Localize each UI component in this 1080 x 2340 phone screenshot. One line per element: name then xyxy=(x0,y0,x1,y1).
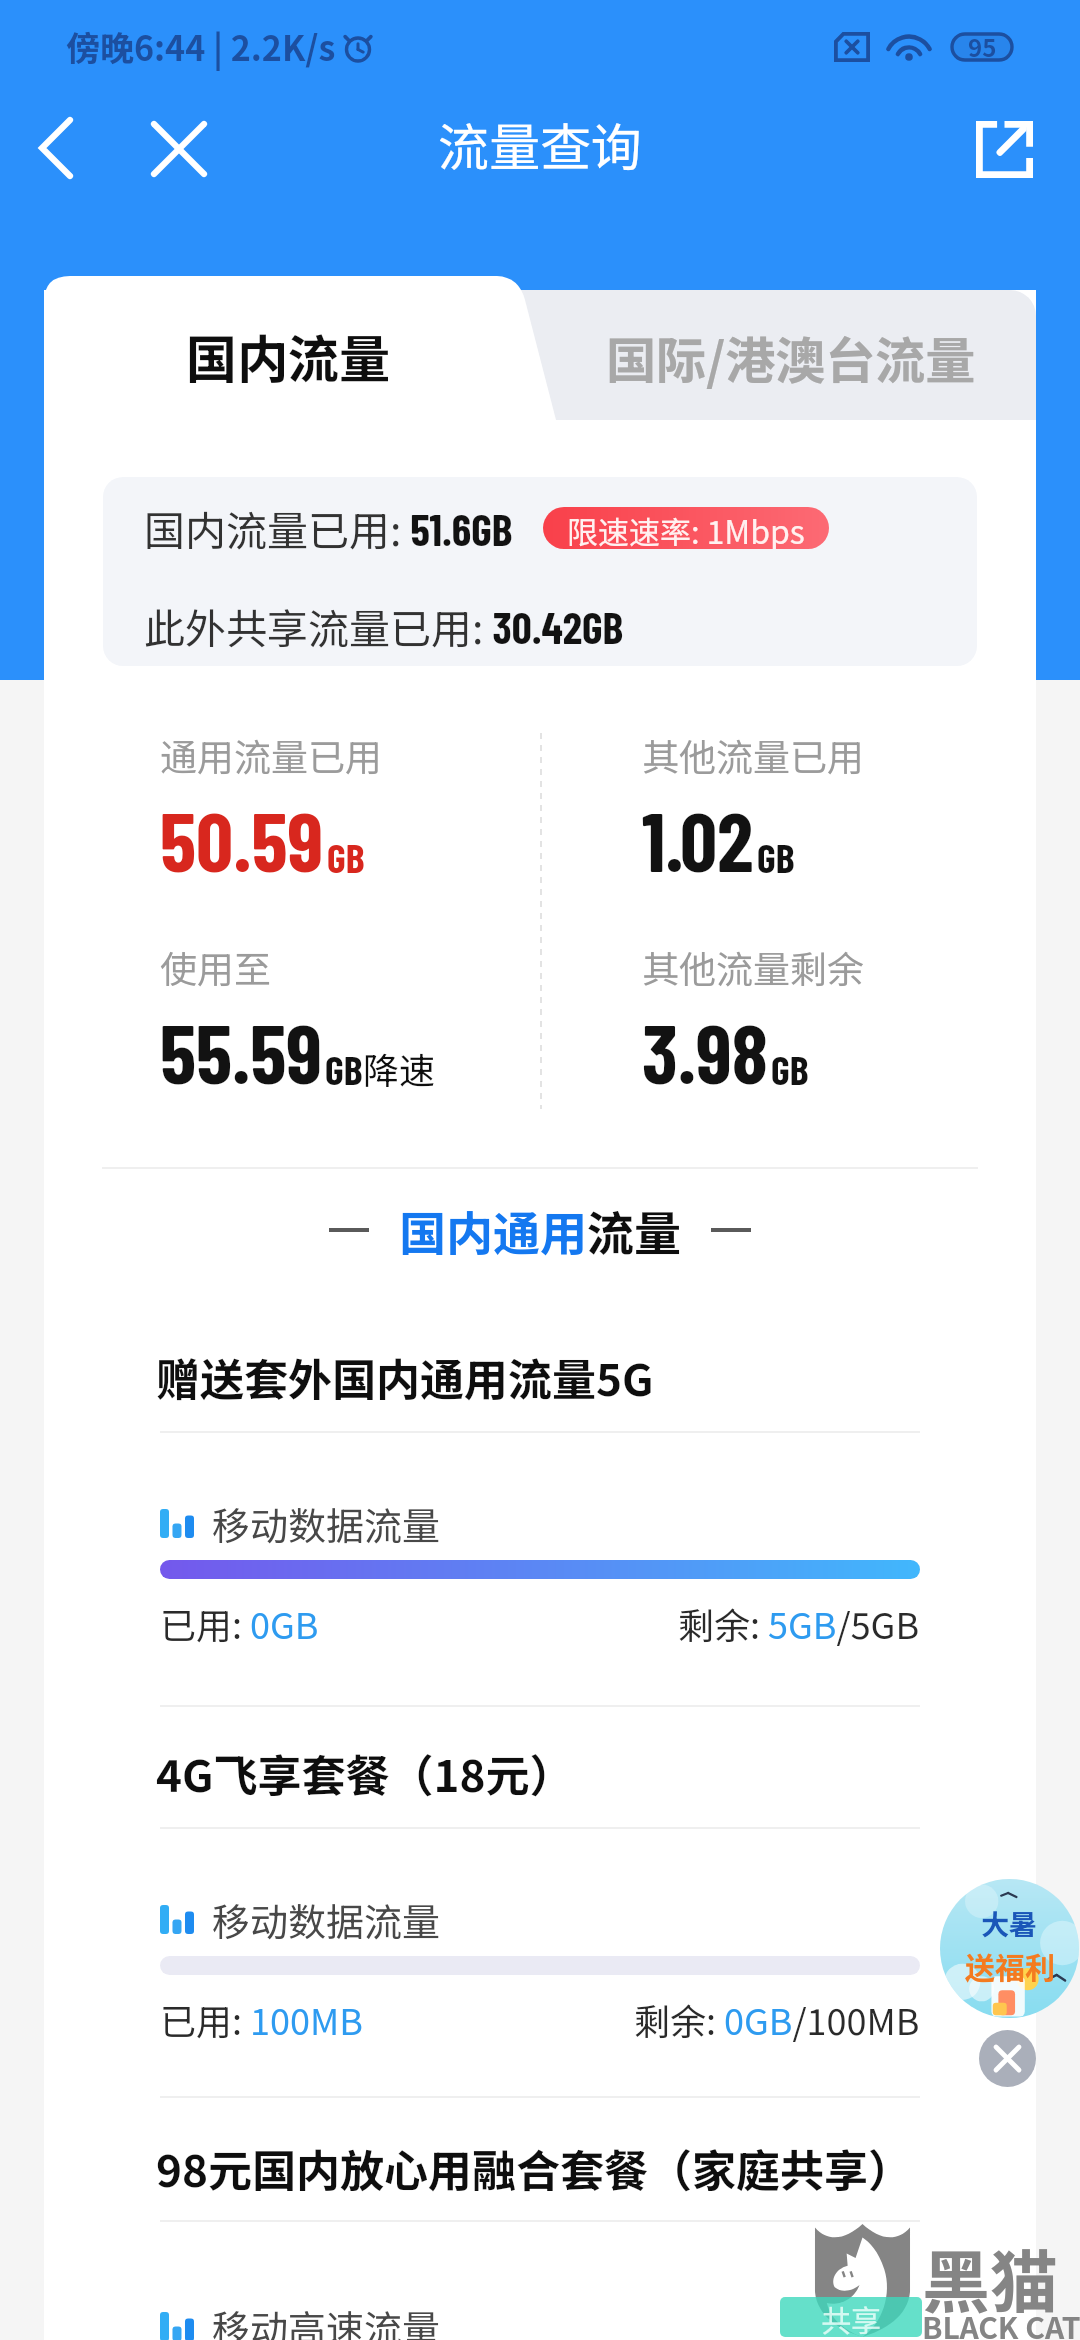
staticText: 国内流量已用: 51.6GB xyxy=(144,498,513,557)
staticText: 3.98 xyxy=(642,1002,768,1100)
staticText: 送福利 xyxy=(965,1944,1055,1987)
staticText: 国内通用流量 xyxy=(399,1196,681,1264)
staticText: 已用: 0GB xyxy=(160,1597,319,1649)
staticText: 赠送套外国内通用流量5G xyxy=(156,1345,654,1409)
staticText: GB xyxy=(771,1045,809,1093)
button[interactable]: 4G飞享套餐（18元） xyxy=(44,1717,1036,1825)
staticText: 流量查询 xyxy=(438,107,643,181)
staticText: BLACK CAT xyxy=(922,2304,1080,2340)
staticText: 1.02 xyxy=(642,790,754,888)
button[interactable]: 98元国内放心用融合套餐（家庭共享） xyxy=(44,2112,1036,2220)
button[interactable]: Close ad xyxy=(979,2030,1036,2087)
staticText: 黑猫 xyxy=(922,2228,1059,2326)
staticText: 其他流量剩余 xyxy=(642,940,864,994)
button[interactable]: Share xyxy=(780,2297,922,2337)
staticText: 降速 xyxy=(363,1042,436,1094)
button[interactable]: Close xyxy=(126,96,232,202)
staticText: 使用至 xyxy=(160,940,271,994)
staticText: 傍晚6:44 | 2.2K/s xyxy=(66,22,336,71)
staticText: 此外共享流量已用: 30.42GB xyxy=(144,596,624,655)
staticText: 移动数据流量 xyxy=(212,1496,441,1551)
staticText: 剩余: 0GB/100MB xyxy=(634,1993,920,2045)
staticText: 限速速率: 1Mbps xyxy=(567,507,805,549)
staticText: 国际/港澳台流量 xyxy=(606,321,976,393)
staticText: 剩余: 5GB/5GB xyxy=(678,1597,920,1649)
button[interactable]: Share xyxy=(954,96,1054,202)
staticText: GB xyxy=(757,833,795,881)
staticText: 95 xyxy=(968,29,997,64)
staticText: 大暑 xyxy=(981,1903,1038,1944)
button[interactable]: Promotion xyxy=(940,1879,1079,2018)
staticText: 其他流量已用 xyxy=(642,728,864,782)
staticText: 98元国内放心用融合套餐（家庭共享） xyxy=(156,2136,912,2200)
staticText: 55.59 xyxy=(160,1002,322,1100)
button[interactable]: 赠送套外国内通用流量5G xyxy=(44,1321,1036,1429)
staticText: 50.59 xyxy=(160,790,324,888)
staticText: 共享 xyxy=(821,2297,881,2337)
staticText: 移动数据流量 xyxy=(212,1892,441,1947)
button[interactable]: 国际/港澳台流量 xyxy=(480,290,1036,420)
staticText: 国内流量 xyxy=(186,319,391,393)
staticText: GB xyxy=(325,1045,363,1093)
staticText: 移动高速流量 xyxy=(212,2299,441,2340)
button[interactable]: 国内流量 xyxy=(44,276,564,420)
staticText: 已用: 100MB xyxy=(160,1993,363,2045)
button[interactable]: Back xyxy=(8,96,104,200)
staticText: 4G飞享套餐（18元） xyxy=(156,1741,574,1805)
staticText: 通用流量已用 xyxy=(160,728,382,782)
staticText: GB xyxy=(327,833,365,881)
